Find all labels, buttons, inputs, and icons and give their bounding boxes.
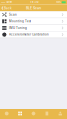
- staticText: Scan: [9, 13, 17, 16]
- staticText: Accelerometer Calibration: [9, 33, 49, 36]
- button[interactable]: Scan: [0, 109, 13, 119]
- staticText: Mounting Test: [9, 20, 31, 23]
- button[interactable]: IMU Tuning: [0, 25, 67, 31]
- staticText: Back: [4, 6, 12, 10]
- staticText: IMU Tuning: [9, 26, 27, 30]
- button[interactable]: Mounting Test: [0, 18, 67, 25]
- button[interactable]: Back: [0, 5, 13, 11]
- button[interactable]: Tune: [27, 109, 40, 119]
- button[interactable]: Logs: [40, 109, 54, 119]
- button[interactable]: Me: [54, 109, 67, 119]
- staticText: BLE Scan: [26, 6, 41, 10]
- button[interactable]: Devices: [13, 109, 27, 119]
- staticText: 100%: [56, 1, 61, 4]
- button[interactable]: Accelerometer Calibration: [0, 31, 67, 38]
- button[interactable]: Scan: [0, 11, 67, 18]
- staticText: 9:41 AM: [29, 1, 38, 4]
- staticText: •••• Carrier: [1, 1, 12, 3]
